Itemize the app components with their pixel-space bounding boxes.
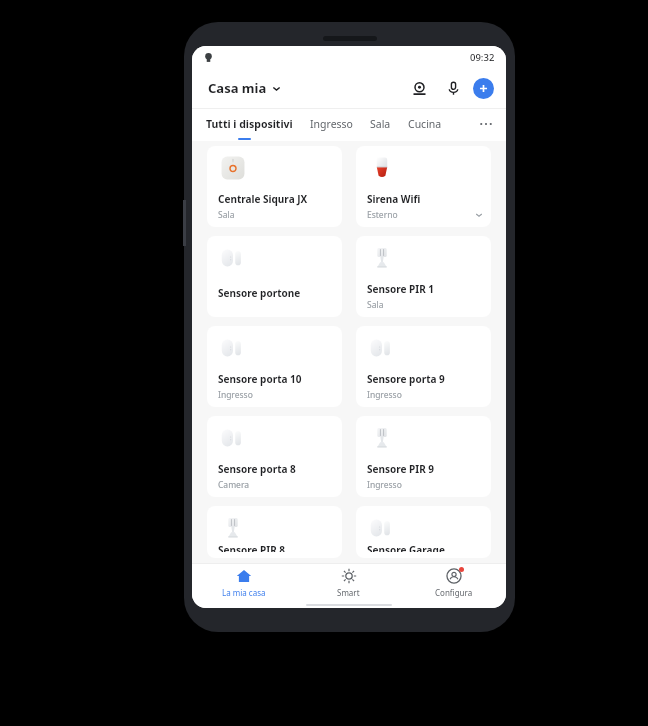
button[interactable]: La mia casa [192,564,296,602]
staticText: Sirena Wifi [367,192,421,206]
staticText: Smart [337,587,360,598]
button[interactable]: Smart [296,564,401,602]
staticText: Esterno [367,209,398,221]
staticText: 09:32 [470,51,495,64]
button[interactable]: Cucina [408,113,442,135]
staticText: Sensore porta 10 [218,372,302,386]
button[interactable]: Sala [370,113,391,135]
staticText: Ingresso [310,117,353,131]
staticText: Ingresso [218,389,253,401]
staticText: Sensore porta 8 [218,462,296,476]
button[interactable]: Sensore porta 10 [207,326,342,407]
button[interactable]: Assistente vocale [439,74,467,102]
button[interactable]: Sensore PIR 9 [356,416,491,497]
staticText: Centrale Siqura JX [218,192,308,206]
staticText: Sensore Garage [367,543,445,552]
staticText: Casa mia [208,79,267,97]
button[interactable]: Sensore Garage [356,506,491,558]
staticText: Sensore PIR 1 [367,282,435,296]
staticText: Tutti i dispositivi [206,117,293,131]
button[interactable]: Centrale Siqura JX [207,146,342,227]
staticText: Sensore portone [218,286,301,300]
button[interactable]: Sensore porta 8 [207,416,342,497]
staticText: Sala [370,117,391,131]
button[interactable]: Sensore portone [207,236,342,317]
button[interactable]: Sensore PIR 1 [356,236,491,317]
staticText: La mia casa [222,587,266,598]
staticText: Ingresso [367,389,402,401]
staticText: Ingresso [367,479,402,491]
staticText: Sensore PIR 9 [367,462,435,476]
staticText: Sensore PIR 8 [218,543,286,552]
button[interactable]: Configura [401,564,506,602]
staticText: Sala [367,299,384,311]
button[interactable]: Sirena Wifi [356,146,491,227]
staticText: Camera [218,479,249,491]
button[interactable]: Sensore PIR 8 [207,506,342,558]
button[interactable]: Casa mia [206,75,283,101]
button[interactable]: Ingresso [310,113,353,135]
staticText: Sensore porta 9 [367,372,445,386]
staticText: Cucina [408,117,442,131]
button[interactable]: Sensore porta 9 [356,326,491,407]
button[interactable]: Tutti i dispositivi [206,113,293,135]
button[interactable]: Aggiungi [473,78,494,99]
button[interactable]: Altre stanze [476,114,496,134]
staticText: Configura [435,587,473,598]
staticText: Sala [218,209,235,221]
button[interactable]: Telecamere [405,74,433,102]
